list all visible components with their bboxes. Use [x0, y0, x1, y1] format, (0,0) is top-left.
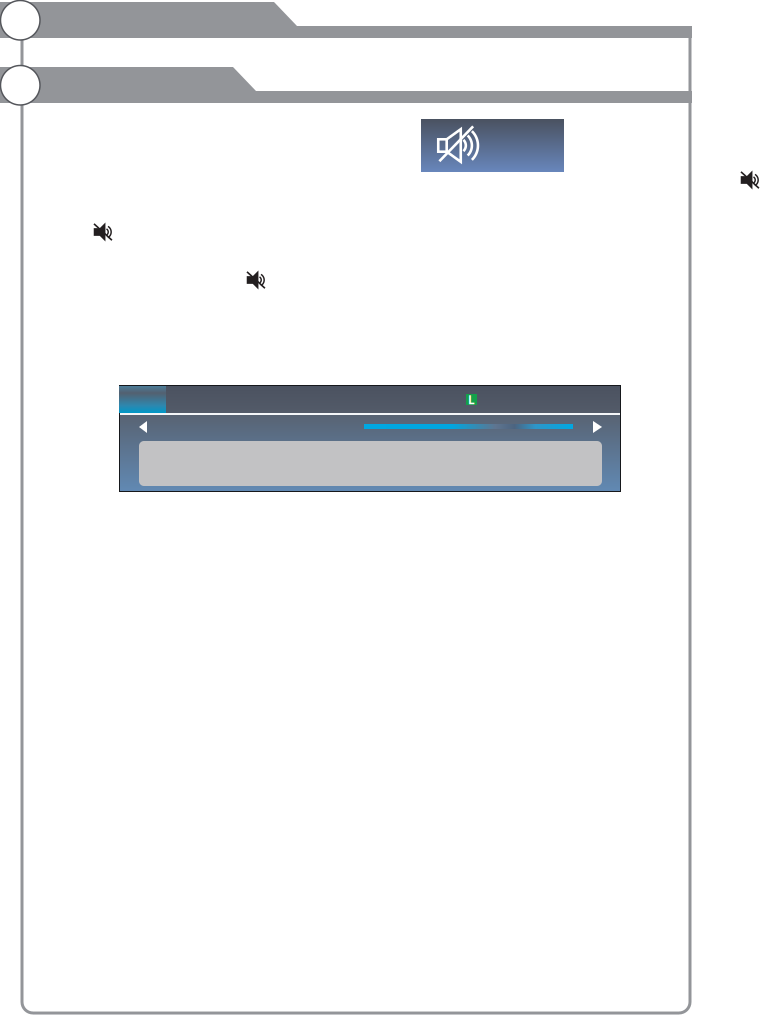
button[interactable]: Previous	[139, 421, 147, 433]
staticText: L	[468, 391, 475, 407]
button[interactable]: Next	[593, 421, 602, 433]
button[interactable]: Mute	[421, 119, 564, 172]
button[interactable]: Channel tab	[119, 386, 166, 413]
